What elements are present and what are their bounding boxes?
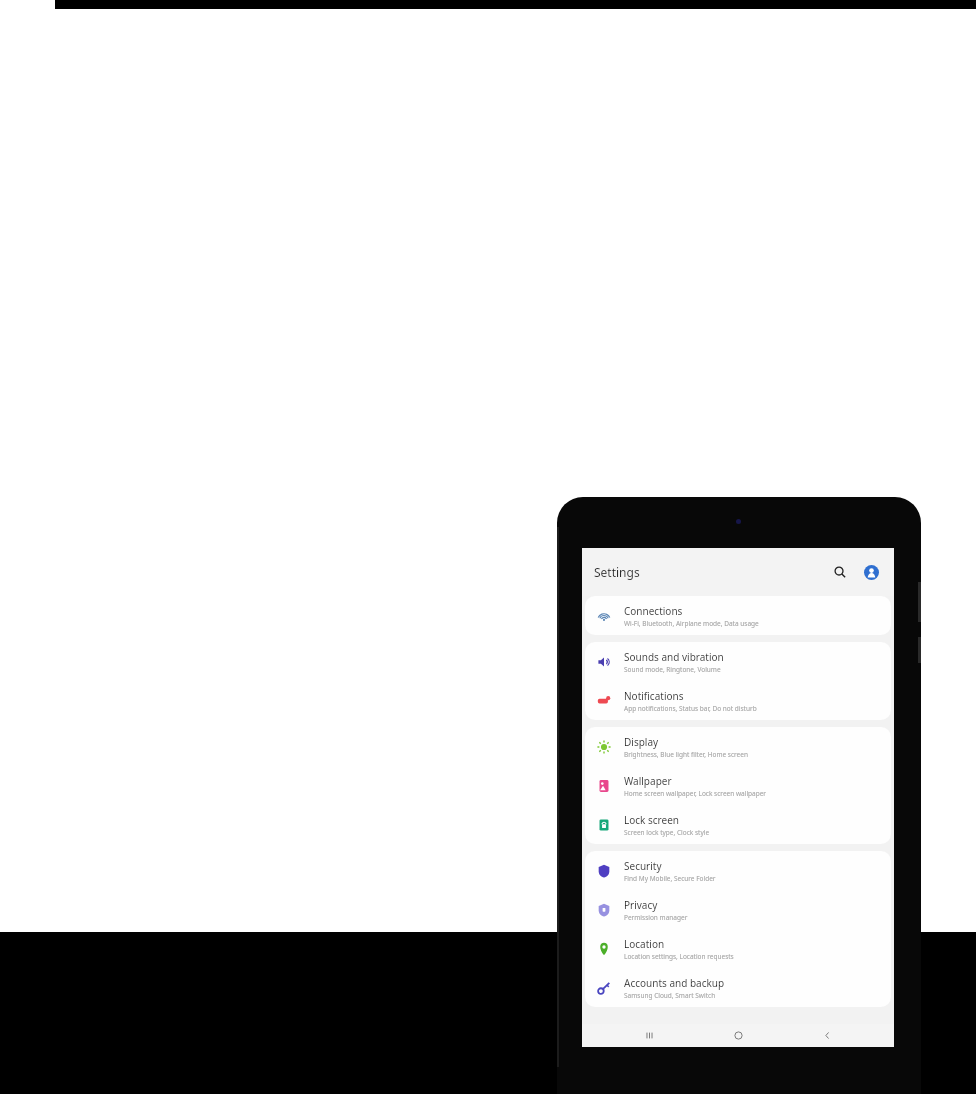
staticText: Sounds and vibration xyxy=(624,650,724,664)
staticText: Wi-Fi, Bluetooth, Airplane mode, Data us… xyxy=(624,619,759,628)
staticText: Samsung Cloud, Smart Switch xyxy=(624,991,716,1000)
staticText: Settings xyxy=(594,564,640,580)
staticText: Privacy xyxy=(624,898,658,912)
staticText: Lock screen xyxy=(624,813,680,827)
button[interactable]: Privacy xyxy=(585,890,891,929)
button[interactable]: Back xyxy=(805,1024,849,1047)
button[interactable]: Accounts and backup xyxy=(585,968,891,1007)
staticText: Location settings, Location requests xyxy=(624,952,734,961)
button[interactable]: Home xyxy=(716,1024,760,1047)
button[interactable]: Wallpaper xyxy=(585,766,891,805)
staticText: Location xyxy=(624,937,665,951)
button[interactable]: Connections xyxy=(585,596,891,635)
button[interactable]: Recents xyxy=(627,1024,671,1047)
staticText: Home screen wallpaper, Lock screen wallp… xyxy=(624,789,767,798)
button[interactable]: Display xyxy=(585,727,891,766)
staticText: App notifications, Status bar, Do not di… xyxy=(624,704,757,713)
button[interactable]: Location xyxy=(585,929,891,968)
button[interactable]: Security xyxy=(585,851,891,890)
staticText: Sound mode, Ringtone, Volume xyxy=(624,665,721,674)
staticText: Brightness, Blue light filter, Home scre… xyxy=(624,750,748,759)
button[interactable]: Notifications xyxy=(585,681,891,720)
staticText: Notifications xyxy=(624,689,684,703)
staticText: Security xyxy=(624,859,662,873)
staticText: Display xyxy=(624,735,659,749)
button[interactable]: Sounds and vibration xyxy=(585,642,891,681)
staticText: Connections xyxy=(624,604,683,618)
button[interactable]: Lock screen xyxy=(585,805,891,844)
button[interactable]: Search xyxy=(829,561,851,583)
staticText: Find My Mobile, Secure Folder xyxy=(624,874,716,883)
staticText: Screen lock type, Clock style xyxy=(624,828,710,837)
staticText: Wallpaper xyxy=(624,774,672,788)
staticText: Permission manager xyxy=(624,913,688,922)
button[interactable]: Account xyxy=(860,561,882,583)
staticText: Accounts and backup xyxy=(624,976,725,990)
